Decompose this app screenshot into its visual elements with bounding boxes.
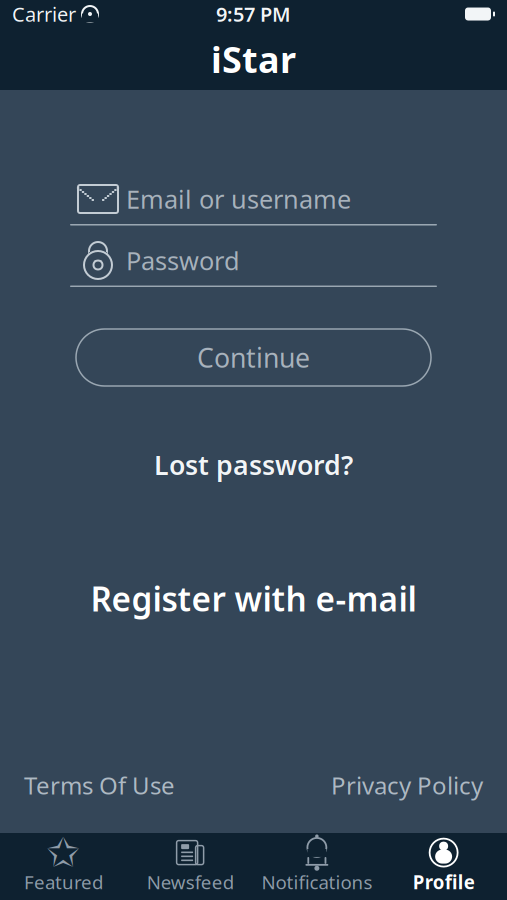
staticText: Privacy Policy bbox=[331, 769, 483, 801]
staticText: Featured bbox=[24, 870, 103, 894]
staticText: Register with e-mail bbox=[90, 576, 416, 621]
button[interactable]: Profile bbox=[380, 833, 507, 900]
button[interactable]: Notifications bbox=[253, 833, 380, 900]
button[interactable]: ✩ bbox=[0, 833, 127, 900]
staticText: Continue bbox=[197, 340, 310, 375]
button[interactable]: Continue bbox=[76, 329, 431, 386]
staticText: Profile bbox=[413, 870, 475, 894]
staticText: Email or username bbox=[126, 182, 351, 216]
staticText: Carrier bbox=[12, 1, 76, 27]
staticText: Notifications bbox=[261, 870, 372, 894]
staticText: Password bbox=[126, 244, 240, 277]
button[interactable]: Register with e-mail bbox=[74, 570, 432, 627]
button[interactable]: Lost password? bbox=[138, 441, 369, 488]
staticText: Lost password? bbox=[154, 447, 353, 482]
button[interactable]: Terms Of Use bbox=[24, 763, 175, 807]
staticText: ✩ bbox=[46, 830, 80, 875]
button[interactable]: Newsfeed bbox=[127, 833, 254, 900]
button[interactable]: Privacy Policy bbox=[331, 763, 483, 807]
staticText: Newsfeed bbox=[147, 870, 234, 894]
staticText: 9:57 PM bbox=[216, 1, 291, 27]
staticText: iStar bbox=[211, 35, 296, 83]
staticText: Terms Of Use bbox=[24, 769, 175, 801]
